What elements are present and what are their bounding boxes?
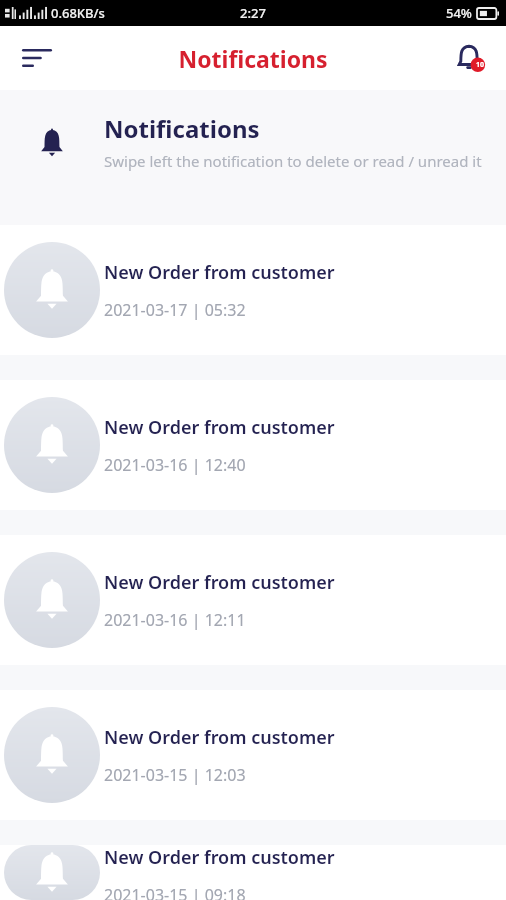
- button[interactable]: New Order from customer: [0, 690, 506, 820]
- staticText: 2021-03-15 | 09:18: [104, 884, 246, 900]
- staticText: New Order from customer: [104, 725, 335, 750]
- staticText: Notifications: [104, 112, 260, 145]
- button[interactable]: New Order from customer: [0, 225, 506, 355]
- staticText: New Order from customer: [104, 260, 335, 285]
- button[interactable]: Menu: [12, 39, 62, 77]
- staticText: New Order from customer: [104, 415, 335, 440]
- staticText: 2021-03-15 | 12:03: [104, 764, 246, 786]
- button[interactable]: New Order from customer: [0, 535, 506, 665]
- staticText: 10: [476, 60, 485, 70]
- staticText: New Order from customer: [104, 845, 335, 870]
- staticText: Swipe left the notification to delete or…: [104, 151, 482, 171]
- staticText: Notifications: [178, 43, 328, 74]
- staticText: 2021-03-16 | 12:11: [104, 609, 246, 631]
- staticText: 54%: [446, 4, 472, 22]
- staticText: 2021-03-17 | 05:32: [104, 299, 246, 321]
- button[interactable]: New Order from customer: [0, 380, 506, 510]
- staticText: New Order from customer: [104, 570, 335, 595]
- staticText: 2:27: [240, 4, 266, 22]
- button[interactable]: New Order from customer: [0, 845, 506, 900]
- staticText: 2021-03-16 | 12:40: [104, 454, 246, 476]
- staticText: 0.68KB/s: [51, 4, 105, 22]
- button[interactable]: Notifications, 10 unread: [446, 35, 492, 81]
